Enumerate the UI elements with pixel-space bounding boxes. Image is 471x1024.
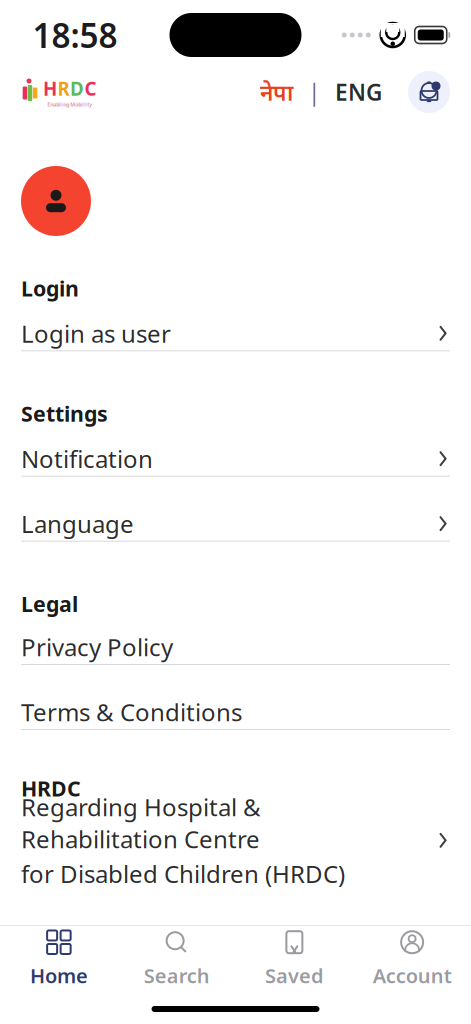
staticText: Settings — [21, 399, 108, 428]
button[interactable]: ENG — [331, 77, 386, 107]
button[interactable]: Notifications — [408, 71, 450, 113]
staticText: H — [43, 76, 57, 101]
staticText: Language — [21, 508, 134, 540]
button[interactable]: Privacy Policy — [21, 630, 450, 664]
staticText: Legal — [21, 590, 78, 618]
staticText: Privacy Policy — [21, 631, 173, 663]
staticText: for Disabled Children (HRDC) — [21, 858, 345, 890]
button[interactable]: Language — [21, 507, 450, 541]
staticText: R — [57, 76, 69, 101]
staticText: Enabling Mobility — [47, 101, 92, 108]
button[interactable]: Search — [118, 926, 236, 992]
button[interactable]: Terms & Conditions — [21, 695, 450, 729]
staticText: Account — [373, 962, 452, 989]
button[interactable]: Notification — [21, 442, 450, 476]
button[interactable]: Regarding Hospital & Rehabilitation Cent… — [21, 812, 450, 868]
button[interactable]: Account — [353, 926, 471, 992]
staticText: ENG — [335, 77, 382, 107]
button[interactable]: Saved — [235, 926, 353, 992]
staticText: HRDC — [21, 774, 81, 802]
staticText: Home — [30, 962, 88, 989]
button[interactable]: Login as user — [21, 316, 450, 350]
staticText: Notification — [21, 443, 153, 475]
staticText: Regarding Hospital & Rehabilitation Cent… — [21, 791, 261, 855]
button[interactable]: Home — [0, 926, 118, 992]
staticText: Saved — [265, 962, 324, 989]
staticText: Terms & Conditions — [21, 696, 242, 728]
button[interactable]: नेपा — [256, 77, 297, 107]
staticText: C — [84, 76, 96, 101]
staticText: | — [308, 77, 320, 107]
staticText: D — [70, 76, 84, 101]
staticText: 18:58 — [32, 13, 117, 57]
staticText: Login as user — [21, 317, 171, 349]
staticText: Search — [144, 962, 210, 989]
staticText: नेपा — [260, 77, 293, 107]
staticText: Login — [21, 274, 79, 302]
